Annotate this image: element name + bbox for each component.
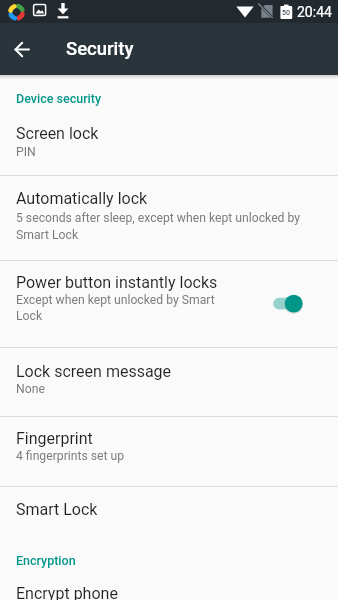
staticText: Automatically lock: [16, 189, 148, 208]
staticText: Fingerprint: [16, 429, 93, 448]
staticText: 4 fingerprints set up: [16, 449, 125, 463]
staticText: None: [16, 382, 45, 396]
staticText: 20:44: [297, 4, 332, 20]
staticText: Screen lock: [16, 124, 99, 143]
staticText: Lock screen message: [16, 362, 172, 381]
staticText: Security: [66, 38, 134, 60]
staticText: Power button instantly locks: [16, 273, 218, 292]
staticText: Device security: [16, 91, 102, 106]
staticText: 50: [282, 9, 290, 17]
staticText: Encryption: [16, 553, 76, 568]
staticText: 5 seconds after sleep, except when kept …: [16, 211, 301, 225]
staticText: Smart Lock: [16, 500, 98, 519]
staticText: Except when kept unlocked by Smart: [16, 293, 215, 307]
staticText: Encrypt phone: [16, 584, 118, 600]
staticText: Smart Lock: [16, 228, 79, 242]
staticText: Lock: [16, 309, 43, 323]
staticText: PIN: [16, 145, 36, 159]
